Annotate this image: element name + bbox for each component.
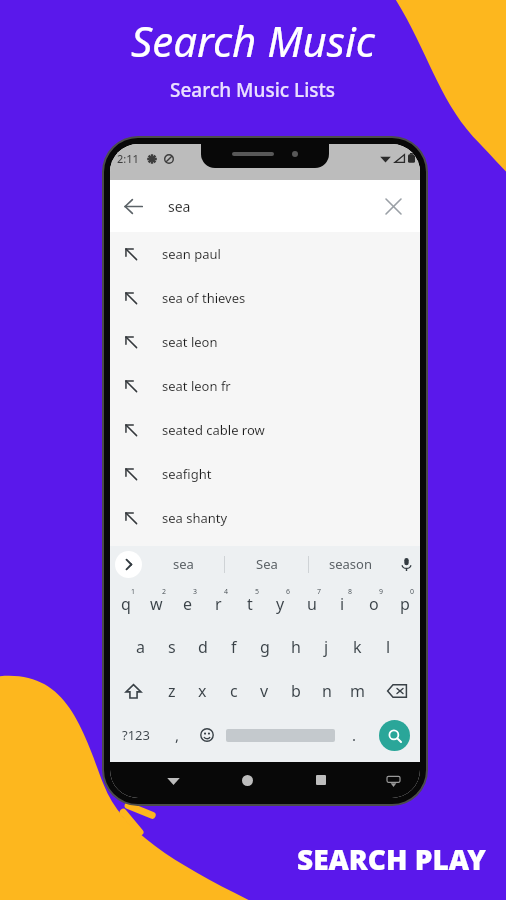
- staticText: seat leon fr: [162, 377, 231, 395]
- staticText: seat leon: [162, 333, 218, 351]
- staticText: t: [247, 593, 253, 615]
- button[interactable]: Search: [379, 720, 410, 751]
- staticText: SEARCH PLAY: [297, 840, 486, 878]
- staticText: u: [307, 593, 317, 615]
- staticText: seated cable row: [162, 421, 265, 439]
- staticText: sean paul: [162, 245, 221, 263]
- staticText: b: [291, 680, 301, 702]
- staticText: s: [168, 636, 176, 658]
- staticText: season: [329, 555, 372, 573]
- button[interactable]: Voice input: [392, 546, 420, 582]
- staticText: 1: [131, 587, 136, 597]
- button[interactable]: k: [342, 625, 373, 669]
- staticText: 0: [410, 587, 415, 597]
- button[interactable]: 6: [265, 582, 296, 625]
- staticText: sea: [173, 555, 194, 573]
- button[interactable]: seated cable row: [110, 408, 420, 452]
- staticText: v: [260, 680, 269, 702]
- button[interactable]: seafight: [110, 452, 420, 496]
- button[interactable]: seat leon: [110, 320, 420, 364]
- button[interactable]: Shift: [110, 669, 156, 713]
- staticText: y: [276, 593, 285, 615]
- staticText: g: [260, 636, 270, 658]
- button[interactable]: d: [187, 625, 218, 669]
- button[interactable]: l: [373, 625, 404, 669]
- button[interactable]: f: [218, 625, 249, 669]
- button[interactable]: 1: [110, 582, 141, 625]
- button[interactable]: j: [311, 625, 342, 669]
- button[interactable]: s: [156, 625, 187, 669]
- button[interactable]: 4: [203, 582, 234, 625]
- staticText: 4: [224, 587, 229, 597]
- staticText: i: [340, 593, 345, 615]
- button[interactable]: Back: [158, 765, 188, 795]
- staticText: r: [215, 593, 222, 615]
- staticText: m: [350, 680, 365, 702]
- button[interactable]: sea of thieves: [110, 276, 420, 320]
- staticText: ,: [175, 725, 180, 745]
- staticText: f: [231, 636, 237, 658]
- button[interactable]: season: [309, 546, 392, 582]
- button[interactable]: Switch keyboard: [380, 767, 406, 793]
- button[interactable]: v: [249, 669, 280, 713]
- button[interactable]: a: [125, 625, 156, 669]
- button[interactable]: Clear search: [370, 183, 416, 229]
- staticText: h: [291, 636, 301, 658]
- button[interactable]: z: [156, 669, 187, 713]
- button[interactable]: Back: [110, 183, 156, 229]
- button[interactable]: Backspace: [373, 669, 420, 713]
- button[interactable]: g: [249, 625, 280, 669]
- staticText: 6: [286, 587, 291, 597]
- staticText: a: [136, 636, 145, 658]
- button[interactable]: 9: [358, 582, 389, 625]
- staticText: Sea: [256, 555, 278, 573]
- staticText: x: [198, 680, 207, 702]
- button[interactable]: 0: [389, 582, 420, 625]
- button[interactable]: h: [280, 625, 311, 669]
- button[interactable]: [222, 713, 339, 757]
- staticText: c: [230, 680, 238, 702]
- staticText: q: [121, 593, 131, 615]
- button[interactable]: ?123: [110, 713, 162, 757]
- staticText: w: [150, 593, 163, 615]
- button[interactable]: b: [280, 669, 311, 713]
- staticText: 2: [162, 587, 167, 597]
- button[interactable]: sean paul: [110, 232, 420, 276]
- button[interactable]: x: [187, 669, 218, 713]
- button[interactable]: .: [339, 713, 369, 757]
- button[interactable]: sea: [142, 546, 224, 582]
- button[interactable]: 7: [296, 582, 327, 625]
- button[interactable]: sea shanty: [110, 496, 420, 540]
- button[interactable]: 5: [234, 582, 265, 625]
- button[interactable]: Sea: [225, 546, 308, 582]
- staticText: .: [352, 725, 357, 745]
- staticText: d: [198, 636, 208, 658]
- button[interactable]: Emoji: [192, 713, 222, 757]
- staticText: 5: [255, 587, 260, 597]
- button[interactable]: m: [342, 669, 373, 713]
- staticText: e: [183, 593, 193, 615]
- button[interactable]: seat leon fr: [110, 364, 420, 408]
- staticText: 7: [317, 587, 322, 597]
- staticText: l: [386, 636, 391, 658]
- button[interactable]: 8: [327, 582, 358, 625]
- staticText: o: [369, 593, 379, 615]
- staticText: ?123: [122, 726, 150, 744]
- button[interactable]: More suggestions: [115, 551, 142, 578]
- staticText: Search Music: [131, 12, 375, 69]
- staticText: k: [353, 636, 362, 658]
- button[interactable]: Recent apps: [306, 765, 336, 795]
- staticText: sea of thieves: [162, 289, 246, 307]
- button[interactable]: ,: [162, 713, 192, 757]
- staticText: n: [322, 680, 332, 702]
- button[interactable]: 2: [141, 582, 172, 625]
- staticText: p: [400, 593, 410, 615]
- button[interactable]: n: [311, 669, 342, 713]
- button[interactable]: 3: [172, 582, 203, 625]
- staticText: 3: [193, 587, 198, 597]
- staticText: 2:11: [117, 151, 139, 166]
- staticText: Search Music Lists: [170, 77, 336, 103]
- button[interactable]: c: [218, 669, 249, 713]
- button[interactable]: Home: [232, 765, 262, 795]
- staticText: 9: [379, 587, 384, 597]
